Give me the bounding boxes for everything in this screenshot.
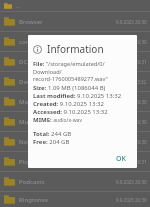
staticText: Size: 1.09 MB (1086044 B) bbox=[33, 84, 132, 92]
button[interactable]: DCIM bbox=[0, 52, 150, 71]
other: Parent folder bbox=[4, 2, 12, 10]
staticText: Browser bbox=[19, 18, 116, 26]
staticText: com.mi.globalbrowser.tmp_start bbox=[19, 38, 116, 46]
staticText: 9.9.2025 20:30 bbox=[116, 197, 147, 203]
button[interactable]: Download bbox=[0, 72, 150, 91]
staticText: Created: 9.10.2025 13:32 bbox=[33, 100, 132, 108]
staticText: Ringtones bbox=[19, 196, 116, 204]
staticText: 9.9.2025 20:30 bbox=[116, 19, 147, 25]
button[interactable]: OK bbox=[111, 151, 131, 167]
staticText: 9.9.2025 20:30 bbox=[116, 99, 147, 105]
staticText: 9.9.2025 20:31 bbox=[116, 159, 147, 165]
staticText: 9.9.2025 20:30 bbox=[116, 39, 147, 45]
staticText: 9.9.2025 20:30 bbox=[116, 119, 147, 125]
staticText: .. bbox=[16, 2, 20, 10]
button[interactable]: Parent folder bbox=[0, 0, 150, 11]
button[interactable]: Ringtones bbox=[0, 192, 150, 207]
staticText: Music bbox=[19, 118, 116, 126]
staticText: Podcasts bbox=[19, 178, 116, 186]
staticText: 9.9.2025 20:30 bbox=[116, 139, 147, 145]
staticText: 9.9.2025 20:31 bbox=[116, 59, 147, 65]
staticText: Last modified: 9.10.2025 13:32 bbox=[33, 92, 132, 100]
staticText: MIME: audio/x-wav bbox=[33, 116, 132, 124]
button[interactable]: com.mi.globalbrowser.tmp_start bbox=[0, 32, 150, 51]
staticText: Accessed: 9.10.2025 13:32 bbox=[33, 108, 132, 116]
staticText: OK bbox=[116, 154, 126, 164]
staticText: 9.10.2025 13:32 bbox=[113, 79, 147, 85]
button[interactable]: Notifications bbox=[0, 132, 150, 151]
staticText: File: "/storage/emulated/0/Download/ rec… bbox=[33, 60, 132, 83]
staticText: Download bbox=[19, 78, 113, 86]
staticText: Pictures bbox=[19, 158, 116, 166]
staticText: DCIM bbox=[19, 58, 116, 66]
button[interactable]: Movies bbox=[0, 92, 150, 111]
button[interactable]: Music bbox=[0, 112, 150, 131]
button[interactable]: Browser bbox=[0, 12, 150, 31]
staticText: Total: 244 GB bbox=[33, 130, 132, 138]
button[interactable]: Pictures bbox=[0, 152, 150, 171]
button[interactable]: Podcasts bbox=[0, 172, 150, 191]
staticText: Free: 204 GB bbox=[33, 138, 132, 146]
staticText: 9.9.2025 20:30 bbox=[116, 179, 147, 185]
staticText: Information bbox=[47, 42, 104, 56]
staticText: Notifications bbox=[19, 138, 116, 146]
staticText: Movies bbox=[19, 98, 116, 106]
